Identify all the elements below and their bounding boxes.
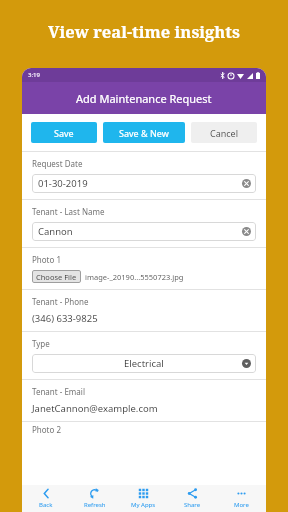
- staticText: Share: [184, 501, 201, 509]
- staticText: Tenant - Email: [32, 386, 85, 397]
- staticText: Cannon: [38, 225, 73, 238]
- button[interactable]: Share: [168, 485, 217, 512]
- staticText: More: [234, 501, 249, 509]
- staticText: Save & New: [119, 127, 169, 139]
- staticText: Electrical: [124, 357, 164, 370]
- button[interactable]: 01-30-2019: [32, 174, 256, 193]
- staticText: Tenant - Last Name: [32, 206, 105, 217]
- staticText: Save: [54, 127, 74, 139]
- button[interactable]: Clear Request Date: [242, 179, 251, 188]
- button[interactable]: Tenant - Email: [32, 386, 256, 415]
- staticText: Type: [32, 338, 50, 349]
- staticText: Request Date: [32, 158, 83, 169]
- staticText: Back: [39, 501, 53, 509]
- staticText: Refresh: [84, 501, 106, 509]
- button[interactable]: Back: [22, 485, 70, 512]
- staticText: JanetCannon@example.com: [32, 402, 158, 415]
- button[interactable]: Save & New: [103, 122, 185, 143]
- staticText: 01-30-2019: [38, 177, 88, 190]
- button[interactable]: Cannon: [32, 222, 256, 241]
- button[interactable]: More: [217, 485, 266, 512]
- button[interactable]: Electrical: [32, 354, 256, 373]
- staticText: Photo 2: [32, 424, 62, 435]
- button[interactable]: Save: [31, 122, 97, 143]
- button[interactable]: Cancel: [191, 122, 257, 143]
- button[interactable]: Refresh: [70, 485, 119, 512]
- button[interactable]: My Apps: [119, 485, 168, 512]
- button[interactable]: Choose File: [36, 270, 77, 283]
- button[interactable]: Tenant - Phone: [32, 296, 256, 325]
- staticText: Cancel: [210, 127, 239, 139]
- staticText: Tenant - Phone: [32, 296, 89, 307]
- staticText: Add Maintenance Request: [76, 91, 212, 106]
- button[interactable]: Clear Tenant - Last Name: [242, 227, 251, 236]
- staticText: (346) 633-9825: [32, 312, 98, 325]
- staticText: My Apps: [131, 501, 156, 509]
- staticText: 3:19: [28, 71, 40, 79]
- staticText: View real-time insights: [48, 20, 240, 42]
- staticText: Choose File: [36, 272, 77, 282]
- staticText: image-_20190...5550723.jpg: [85, 272, 184, 282]
- staticText: Photo 1: [32, 254, 62, 265]
